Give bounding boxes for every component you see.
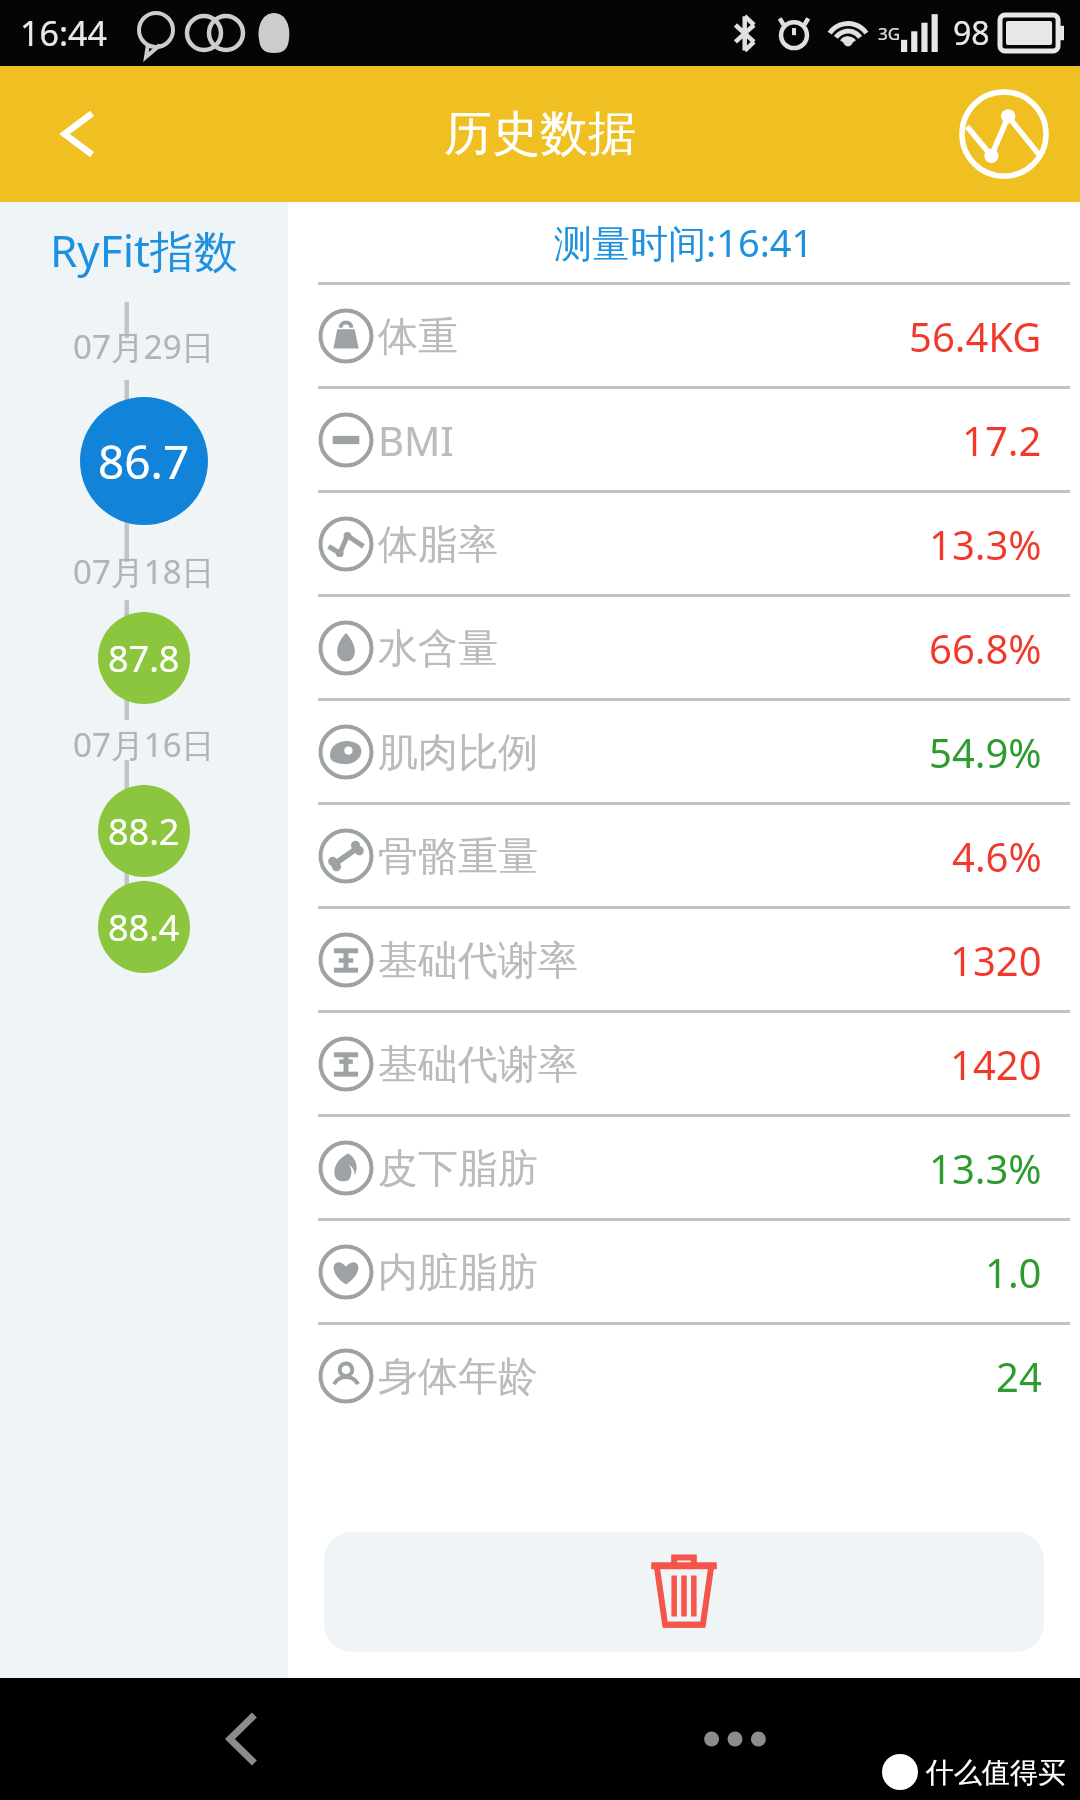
button[interactable]: Delete record xyxy=(324,1532,1044,1652)
staticText: 肌肉比例 xyxy=(378,727,538,777)
staticText: 24 xyxy=(996,1349,1042,1403)
staticText: RyFit指数 xyxy=(50,220,238,280)
button[interactable]: 水含量 xyxy=(288,597,1080,698)
button[interactable]: 88.4 xyxy=(98,881,190,973)
button[interactable]: 身体年龄 xyxy=(288,1325,1080,1426)
staticText: 体重 xyxy=(378,311,458,361)
staticText: 17.2 xyxy=(962,413,1042,467)
staticText: 1.0 xyxy=(985,1245,1042,1299)
button[interactable]: 86.7 xyxy=(80,397,208,525)
staticText: 88.2 xyxy=(108,807,180,856)
button[interactable]: 皮下脂肪 xyxy=(288,1117,1080,1218)
button[interactable]: 骨骼重量 xyxy=(288,805,1080,906)
staticText: 身体年龄 xyxy=(378,1351,538,1401)
button[interactable]: Back xyxy=(200,1699,280,1779)
button[interactable]: 体重 xyxy=(288,285,1080,386)
staticText: 基础代谢率 xyxy=(378,935,578,985)
button[interactable]: 肌肉比例 xyxy=(288,701,1080,802)
staticText: 什么值得买 xyxy=(926,1755,1066,1790)
button[interactable]: 基础代谢率 xyxy=(288,1013,1080,1114)
staticText: 07月29日 xyxy=(73,324,215,369)
button[interactable]: 内脏脂肪 xyxy=(288,1221,1080,1322)
staticText: 86.7 xyxy=(98,430,190,493)
staticText: 1420 xyxy=(950,1037,1042,1091)
staticText: 3G xyxy=(878,22,901,45)
button[interactable]: 基础代谢率 xyxy=(288,909,1080,1010)
staticText: 皮下脂肪 xyxy=(378,1143,538,1193)
staticText: 87.8 xyxy=(108,634,180,683)
staticText: 1320 xyxy=(950,933,1042,987)
button[interactable]: Back xyxy=(30,89,120,179)
staticText: 56.4KG xyxy=(909,309,1042,363)
staticText: 体脂率 xyxy=(378,519,498,569)
staticText: 13.3% xyxy=(929,517,1042,571)
staticText: 98 xyxy=(953,11,990,55)
button[interactable]: BMI xyxy=(288,389,1080,490)
staticText: 54.9% xyxy=(929,725,1042,779)
button[interactable]: Recents xyxy=(690,1719,780,1759)
staticText: 水含量 xyxy=(378,623,498,673)
staticText: BMI xyxy=(378,413,454,467)
staticText: 66.8% xyxy=(929,621,1042,675)
button[interactable]: 88.2 xyxy=(98,785,190,877)
button[interactable]: 87.8 xyxy=(98,612,190,704)
staticText: 内脏脂肪 xyxy=(378,1247,538,1297)
staticText: 13.3% xyxy=(929,1141,1042,1195)
staticText: 88.4 xyxy=(108,903,180,952)
staticText: 基础代谢率 xyxy=(378,1039,578,1089)
staticText: 历史数据 xyxy=(444,104,636,164)
staticText: 4.6% xyxy=(952,829,1042,883)
staticText: 骨骼重量 xyxy=(378,831,538,881)
staticText: 07月18日 xyxy=(73,549,215,594)
staticText: 16:44 xyxy=(20,10,107,56)
button[interactable]: 体脂率 xyxy=(288,493,1080,594)
staticText: 测量时间:16:41 xyxy=(554,216,814,268)
staticText: 07月16日 xyxy=(73,722,215,767)
button[interactable]: RyFit logo xyxy=(954,84,1054,184)
